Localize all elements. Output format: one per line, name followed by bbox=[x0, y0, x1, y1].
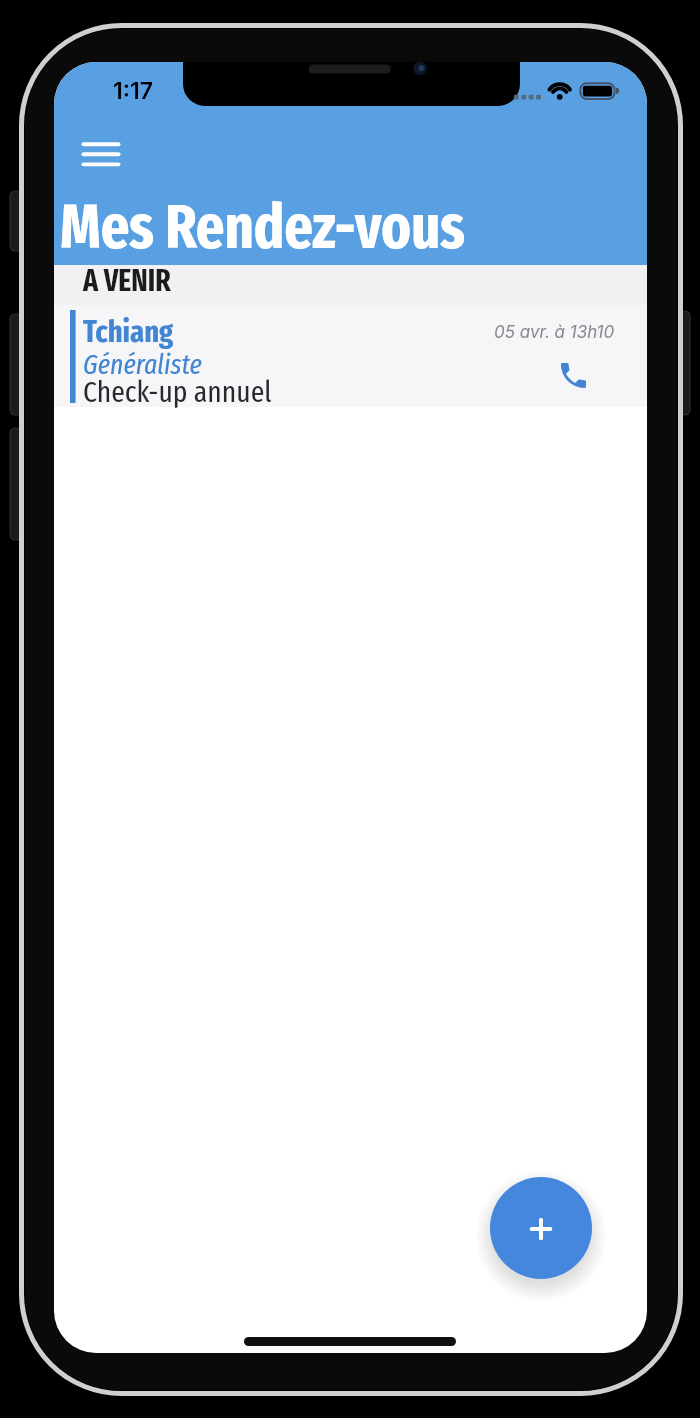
staticText: Mes Rendez-vous bbox=[60, 191, 465, 264]
staticText: A VENIR bbox=[83, 263, 171, 299]
staticText: 1:17 bbox=[113, 77, 154, 105]
staticText: Tchiang bbox=[83, 313, 174, 350]
button[interactable] bbox=[74, 134, 128, 182]
button[interactable]: Tchiang bbox=[54, 305, 647, 407]
staticText: Check-up annuel bbox=[83, 374, 272, 410]
staticText: Généraliste bbox=[83, 348, 202, 382]
button[interactable] bbox=[490, 1177, 592, 1279]
button[interactable] bbox=[549, 353, 605, 401]
staticText: 05 avr. à 13h10 bbox=[494, 322, 615, 343]
